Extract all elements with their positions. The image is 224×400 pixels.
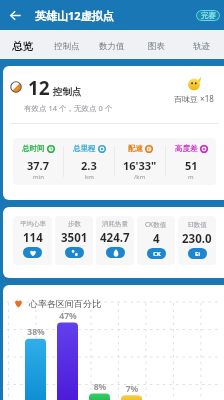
staticText: 平均心率: [20, 220, 46, 228]
button[interactable]: 数力值: [89, 30, 134, 59]
staticText: CK数值: [145, 220, 167, 229]
staticText: 总里程: [73, 144, 96, 153]
button[interactable]: EI数值: [178, 216, 216, 265]
staticText: 230.0: [182, 231, 212, 247]
button[interactable]: Back: [0, 0, 30, 30]
staticText: 数力值: [99, 41, 125, 52]
staticText: 424.7: [100, 230, 130, 246]
staticText: 配速: [128, 144, 143, 153]
staticText: 47%: [54, 310, 82, 322]
staticText: 总时间: [22, 144, 45, 153]
staticText: 4: [153, 231, 160, 247]
staticText: 2.3: [81, 158, 97, 173]
button[interactable]: 步数: [55, 216, 93, 265]
staticText: 完赛: [201, 11, 216, 20]
staticText: 114: [23, 230, 43, 246]
button[interactable]: 完赛: [196, 10, 220, 21]
staticText: CK: [153, 250, 161, 258]
staticText: 控制点: [54, 41, 80, 52]
staticText: 图表: [148, 41, 165, 52]
staticText: 高度差: [175, 144, 198, 153]
staticText: 消耗热量: [102, 220, 128, 228]
staticText: Ei: [195, 250, 201, 258]
button[interactable]: 消耗热量: [96, 216, 134, 265]
staticText: 3501: [61, 230, 88, 246]
staticText: /km: [134, 173, 146, 181]
staticText: 51: [185, 158, 198, 173]
staticText: min: [33, 173, 44, 181]
staticText: m: [188, 173, 194, 181]
button[interactable]: 平均心率: [13, 216, 52, 265]
staticText: 英雄山12虚拟点: [35, 8, 114, 23]
staticText: 心率各区间百分比: [29, 298, 101, 309]
button[interactable]: CK数值: [137, 216, 175, 265]
staticText: 7%: [118, 383, 146, 395]
staticText: 12: [28, 75, 50, 101]
staticText: 控制点: [53, 86, 82, 98]
staticText: 38%: [22, 326, 50, 338]
staticText: km: [85, 173, 94, 181]
staticText: 8%: [86, 381, 114, 393]
staticText: 步数: [68, 220, 81, 228]
button[interactable]: 控制点: [44, 30, 89, 59]
staticText: 轨迹: [193, 41, 210, 52]
staticText: 百味豆 ×18: [174, 93, 214, 104]
staticText: 有效点 14 个，无效点 0 个: [24, 103, 113, 113]
staticText: 总览: [12, 40, 33, 53]
button[interactable]: 总览: [0, 30, 44, 59]
staticText: 16'33": [123, 158, 157, 173]
button[interactable]: 图表: [134, 30, 179, 59]
staticText: EI数值: [188, 220, 207, 229]
button[interactable]: 轨迹: [179, 30, 224, 59]
staticText: 37.7: [27, 158, 49, 173]
